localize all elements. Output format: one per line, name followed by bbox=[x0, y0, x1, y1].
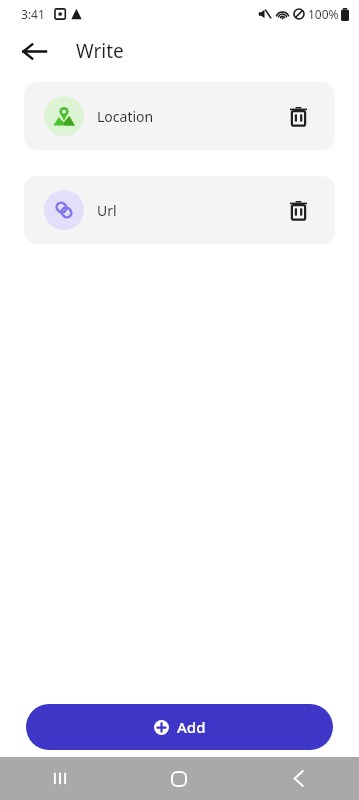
staticText: 100% bbox=[308, 6, 339, 22]
button[interactable]: Recents bbox=[0, 757, 119, 800]
button[interactable]: Home bbox=[119, 757, 239, 800]
staticText: 3:41 bbox=[21, 6, 45, 22]
button[interactable]: Delete Location bbox=[281, 99, 315, 133]
button[interactable]: Back bbox=[239, 757, 359, 800]
button[interactable]: Delete Url bbox=[281, 193, 315, 227]
button[interactable]: Back bbox=[14, 31, 54, 71]
button[interactable]: Add bbox=[26, 704, 333, 750]
staticText: Add bbox=[177, 717, 206, 737]
staticText: Url bbox=[97, 201, 117, 220]
staticText: Write bbox=[76, 38, 124, 64]
button[interactable]: Location bbox=[24, 82, 335, 150]
button[interactable]: Url bbox=[24, 176, 335, 244]
staticText: Location bbox=[97, 107, 154, 126]
